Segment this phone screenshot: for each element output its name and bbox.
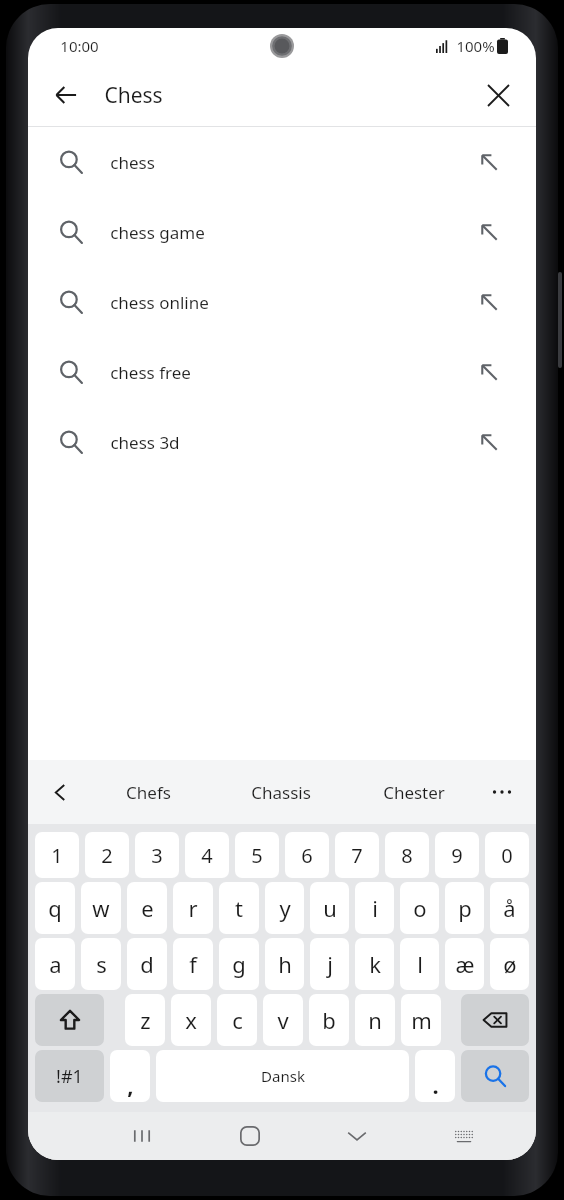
staticText: e — [141, 893, 154, 923]
button[interactable]: Shift — [35, 994, 104, 1046]
button[interactable]: Backspace — [461, 994, 529, 1046]
button[interactable]: i — [355, 882, 394, 934]
staticText: 3 — [151, 842, 163, 869]
staticText: 8 — [401, 842, 413, 869]
button[interactable]: h — [265, 938, 304, 990]
staticText: q — [48, 893, 62, 923]
staticText: h — [278, 949, 292, 979]
button[interactable]: , — [110, 1050, 150, 1102]
button[interactable]: 1 — [35, 832, 79, 878]
button[interactable]: j — [310, 938, 349, 990]
button[interactable]: 4 — [185, 832, 229, 878]
button[interactable]: d — [127, 938, 167, 990]
staticText: æ — [455, 949, 475, 979]
staticText: Dansk — [261, 1066, 305, 1086]
staticText: , — [127, 1070, 134, 1100]
button[interactable]: chess online — [28, 267, 536, 337]
button[interactable]: 9 — [435, 832, 479, 878]
button[interactable]: l — [400, 938, 439, 990]
button[interactable]: Insert chess — [472, 145, 506, 179]
button[interactable]: e — [127, 882, 167, 934]
button[interactable]: z — [125, 994, 165, 1046]
button[interactable]: n — [355, 994, 395, 1046]
staticText: chess game — [110, 221, 205, 244]
staticText: p — [458, 893, 472, 923]
button[interactable]: q — [35, 882, 75, 934]
button[interactable]: 6 — [285, 832, 329, 878]
staticText: g — [232, 949, 246, 979]
button[interactable]: Search — [461, 1050, 529, 1102]
staticText: 1 — [51, 842, 63, 869]
button[interactable]: a — [35, 938, 75, 990]
staticText: v — [277, 1005, 289, 1035]
staticText: ø — [503, 949, 517, 979]
button[interactable]: m — [401, 994, 441, 1046]
staticText: z — [140, 1005, 151, 1035]
button[interactable]: c — [217, 994, 257, 1046]
button[interactable]: Insert chess free — [472, 355, 506, 389]
button[interactable]: o — [400, 882, 439, 934]
staticText: w — [92, 893, 110, 923]
button[interactable]: More options — [480, 770, 524, 814]
button[interactable]: æ — [445, 938, 484, 990]
button[interactable]: chess — [28, 127, 536, 197]
staticText: x — [185, 1005, 197, 1035]
staticText: 5 — [251, 842, 263, 869]
staticText: 9 — [451, 842, 463, 869]
button[interactable]: Symbols — [35, 1050, 104, 1102]
button[interactable]: 3 — [135, 832, 179, 878]
button[interactable]: chess game — [28, 197, 536, 267]
button[interactable]: Back — [42, 71, 90, 119]
button[interactable]: t — [219, 882, 259, 934]
button[interactable]: chess 3d — [28, 407, 536, 477]
button[interactable]: Clear search — [474, 71, 522, 119]
staticText: 6 — [301, 842, 313, 869]
button[interactable]: Chester — [347, 760, 480, 824]
button[interactable]: chess free — [28, 337, 536, 407]
button[interactable]: Chassis — [214, 760, 347, 824]
button[interactable]: 8 — [385, 832, 429, 878]
staticText: chess — [110, 151, 155, 174]
button[interactable]: Insert chess game — [472, 215, 506, 249]
staticText: chess free — [110, 361, 191, 384]
staticText: s — [96, 949, 107, 979]
button[interactable]: Previous suggestions — [38, 770, 82, 814]
button[interactable]: v — [263, 994, 303, 1046]
staticText: Chefs — [126, 781, 171, 804]
button[interactable]: Home — [196, 1112, 303, 1160]
button[interactable]: k — [355, 938, 394, 990]
staticText: r — [188, 893, 198, 923]
button[interactable]: 0 — [485, 832, 529, 878]
button[interactable]: Dansk — [156, 1050, 409, 1102]
button[interactable]: Insert chess online — [472, 285, 506, 319]
button[interactable]: Hide keyboard — [303, 1112, 410, 1160]
button[interactable]: Chefs — [82, 760, 214, 824]
button[interactable]: 7 — [335, 832, 379, 878]
button[interactable]: b — [309, 994, 349, 1046]
staticText: m — [411, 1005, 432, 1035]
button[interactable]: Keyboard layout — [410, 1112, 517, 1160]
button[interactable]: p — [445, 882, 484, 934]
button[interactable]: 5 — [235, 832, 279, 878]
staticText: !#1 — [56, 1064, 83, 1089]
button[interactable]: f — [173, 938, 213, 990]
staticText: a — [49, 949, 62, 979]
staticText: i — [372, 893, 378, 923]
button[interactable]: Recent apps — [88, 1112, 196, 1160]
button[interactable]: w — [81, 882, 121, 934]
button[interactable]: s — [81, 938, 121, 990]
button[interactable]: r — [173, 882, 213, 934]
staticText: Chassis — [251, 781, 311, 804]
staticText: o — [413, 893, 427, 923]
button[interactable]: g — [219, 938, 259, 990]
button[interactable]: 2 — [85, 832, 129, 878]
staticText: 0 — [501, 842, 513, 869]
button[interactable]: ø — [490, 938, 529, 990]
button[interactable]: u — [310, 882, 349, 934]
button[interactable]: . — [415, 1050, 455, 1102]
button[interactable]: Insert chess 3d — [472, 425, 506, 459]
button[interactable]: x — [171, 994, 211, 1046]
button[interactable]: å — [490, 882, 529, 934]
button[interactable]: y — [265, 882, 304, 934]
staticText: c — [232, 1005, 243, 1035]
